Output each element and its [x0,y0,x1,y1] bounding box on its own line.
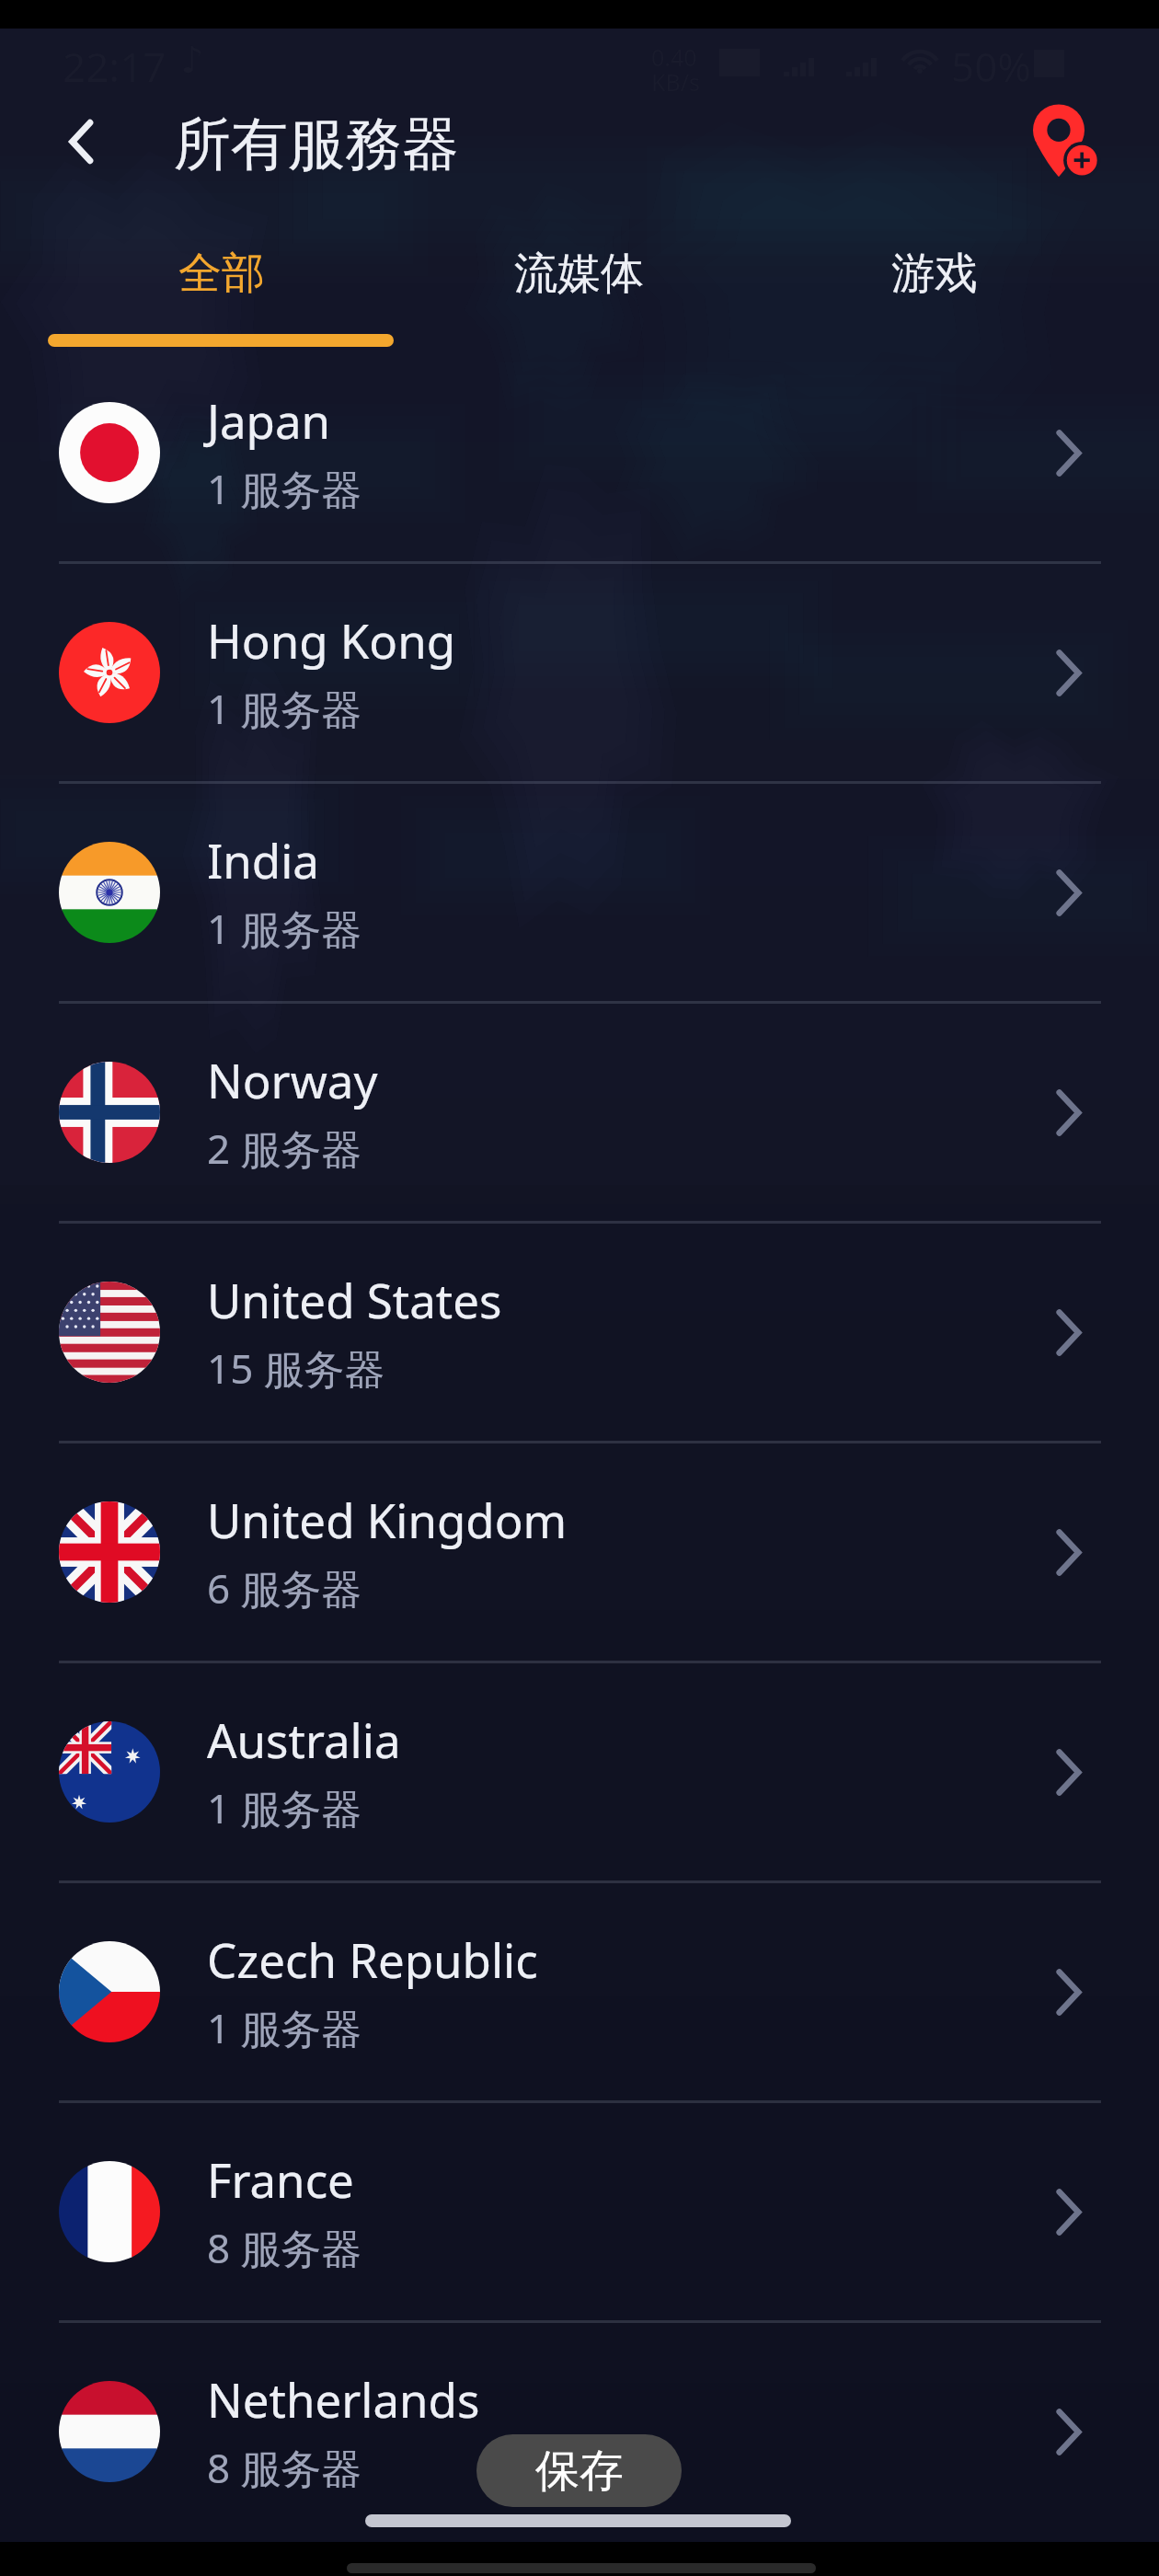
staticText: Netherlands [207,2367,480,2431]
staticText: United Kingdom [207,1488,568,1551]
staticText: 6 服务器 [207,1560,362,1616]
button[interactable]: United States [0,1224,1159,1441]
button[interactable]: Norway [0,1004,1159,1221]
button[interactable]: Japan [0,344,1159,561]
button[interactable]: 流媒体 [400,208,757,318]
staticText: 1 服务器 [207,2000,362,2055]
button[interactable]: United Kingdom [0,1443,1159,1661]
staticText: 1 服务器 [207,1780,362,1835]
button[interactable]: Netherlands [0,2323,1159,2540]
staticText: 8 服务器 [207,2220,362,2275]
staticText: Hong Kong [207,608,456,672]
staticText: 2 服务器 [207,1121,362,1176]
staticText: 游戏 [891,247,978,301]
staticText: 1 服务器 [207,461,362,516]
staticText: Australia [207,1708,401,1771]
staticText: Japan [207,388,331,452]
staticText: 1 服务器 [207,901,362,956]
button[interactable]: Back [48,109,114,175]
staticText: 8 服务器 [207,2440,362,2495]
staticText: 保存 [535,2444,624,2499]
button[interactable]: Hong Kong [0,564,1159,781]
button[interactable]: Add location [1021,98,1109,186]
button[interactable]: India [0,784,1159,1001]
staticText: 所有服務器 [174,109,459,180]
button[interactable]: 游戏 [756,208,1113,318]
button[interactable]: Czech Republic [0,1883,1159,2100]
button[interactable]: France [0,2103,1159,2320]
staticText: 流媒体 [514,247,644,301]
button[interactable]: 保存 [476,2434,682,2507]
button[interactable]: 全部 [43,208,400,318]
button[interactable]: Australia [0,1663,1159,1880]
staticText: 1 服务器 [207,681,362,736]
staticText: 全部 [178,247,265,301]
staticText: 15 服务器 [207,1340,385,1396]
staticText: United States [207,1268,502,1331]
staticText: Norway [207,1048,378,1111]
staticText: India [207,828,319,891]
staticText: France [207,2147,354,2211]
staticText: Czech Republic [207,1927,538,1991]
